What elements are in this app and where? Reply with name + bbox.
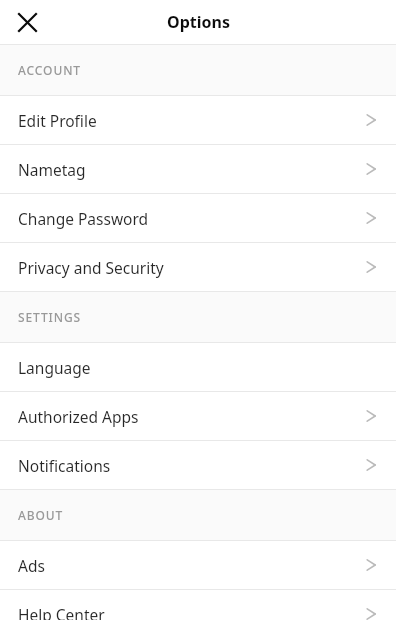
button[interactable]: Notifications: [0, 441, 396, 489]
staticText: Nametag: [18, 159, 362, 180]
button[interactable]: Nametag: [0, 145, 396, 193]
staticText: Authorized Apps: [18, 406, 362, 427]
staticText: ACCOUNT: [18, 62, 82, 78]
staticText: Ads: [18, 555, 362, 576]
staticText: Options: [167, 11, 230, 33]
staticText: Help Center: [18, 604, 362, 620]
staticText: Notifications: [18, 455, 362, 476]
button[interactable]: Authorized Apps: [0, 392, 396, 440]
button[interactable]: Edit Profile: [0, 96, 396, 144]
button[interactable]: Language: [0, 343, 396, 391]
staticText: Language: [18, 357, 362, 378]
button[interactable]: Ads: [0, 541, 396, 589]
staticText: SETTINGS: [18, 309, 82, 325]
button[interactable]: Close: [10, 5, 44, 39]
button[interactable]: Change Password: [0, 194, 396, 242]
staticText: Change Password: [18, 208, 362, 229]
button[interactable]: Help Center: [0, 590, 396, 620]
button[interactable]: Privacy and Security: [0, 243, 396, 291]
staticText: Privacy and Security: [18, 257, 362, 278]
staticText: Edit Profile: [18, 110, 362, 131]
staticText: ABOUT: [18, 507, 64, 523]
